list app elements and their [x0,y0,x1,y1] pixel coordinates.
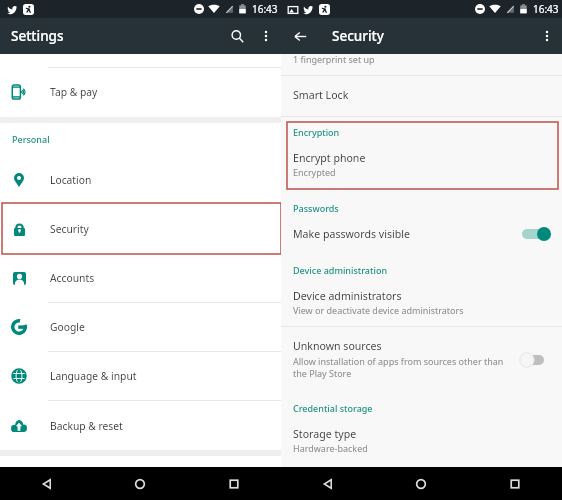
button[interactable] [0,254,281,302]
button[interactable] [0,352,281,400]
staticText: Encrypted [293,166,336,178]
button[interactable] [0,54,281,117]
button[interactable]: Back [281,467,374,500]
staticText: Make passwords visible [293,227,410,241]
staticText: 1 fingerprint set up [293,53,375,65]
staticText: Personal [12,133,50,145]
staticText: Unknown sources [293,339,382,353]
staticText: Security [50,222,89,236]
button[interactable] [281,76,562,117]
staticText: Accounts [50,271,95,285]
staticText: 16:43 [252,2,278,16]
button[interactable]: Recents [468,467,562,500]
staticText: 16:43 [533,2,559,16]
button[interactable]: Switch on [520,226,550,242]
button[interactable]: More options [532,21,562,51]
button[interactable]: Home [93,467,187,500]
button[interactable]: Search [222,21,252,51]
button[interactable]: Back [285,21,315,51]
staticText: Settings [11,27,64,45]
button[interactable] [0,401,281,451]
button[interactable] [281,218,562,250]
staticText: Hardware-backed [293,442,368,454]
staticText: Language & input [50,369,137,383]
button[interactable] [0,123,281,155]
staticText: Location [50,173,92,187]
button[interactable] [281,282,562,326]
staticText: Backup & reset [50,419,123,433]
staticText: Device administration [293,264,388,276]
button[interactable] [281,420,562,462]
button[interactable]: Switch off [520,352,550,368]
button[interactable]: More options [251,21,281,51]
staticText: Security [332,27,384,45]
staticText: Encrypt phone [293,151,366,165]
button[interactable] [0,204,281,254]
staticText: Passwords [293,202,339,214]
staticText: Encryption [293,126,340,138]
button[interactable] [0,303,281,351]
button[interactable] [281,54,562,76]
button[interactable] [281,327,562,383]
staticText: Device administrators [293,289,402,303]
button[interactable]: Home [374,467,468,500]
staticText: the Play Store [293,367,352,379]
staticText: Smart Lock [293,88,349,102]
staticText: Storage type [293,427,357,441]
staticText: Google [50,320,85,334]
staticText: View or deactivate device administrators [293,304,464,316]
button[interactable]: Recents [187,467,281,500]
button[interactable] [0,155,281,204]
staticText: Allow installation of apps from sources … [293,355,504,367]
staticText: Tap & pay [50,85,98,99]
staticText: Credential storage [293,402,373,414]
button[interactable]: Back [0,467,93,500]
button[interactable] [281,140,562,188]
